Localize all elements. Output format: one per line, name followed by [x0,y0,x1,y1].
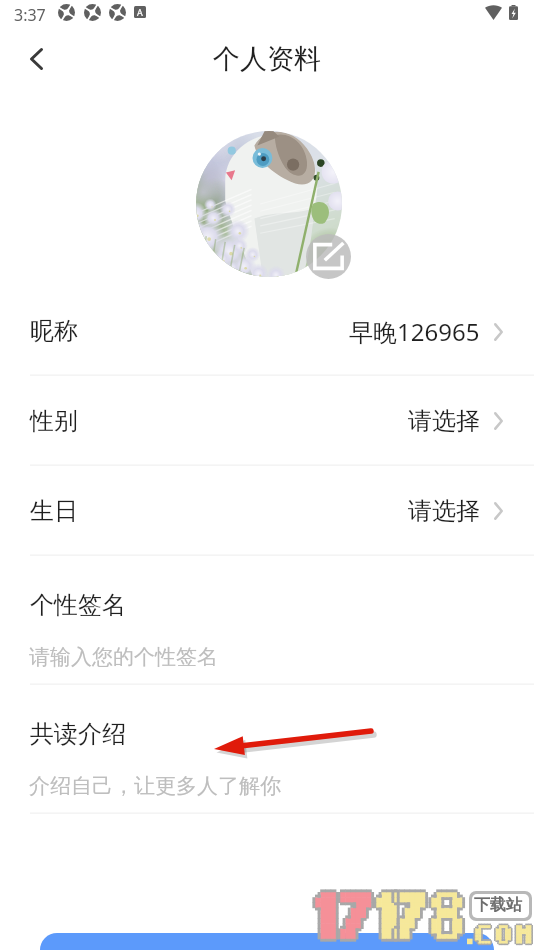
button[interactable]: 个性签名 [0,556,534,685]
staticText: 性别 [30,406,78,436]
staticText: A [137,6,143,18]
button[interactable]: Profile photo [196,131,342,277]
staticText: 下载站 [474,895,522,915]
staticText: 个人资料 [213,42,321,76]
staticText: 请选择 [408,496,480,526]
staticText: 早晚126965 [349,315,480,348]
staticText: 请输入您的个性签名 [29,644,218,670]
staticText: 共读介绍 [30,719,126,749]
button[interactable]: Change profile photo [306,234,351,279]
staticText: 个性签名 [30,590,126,620]
staticText: 介绍自己，让更多人了解你 [29,773,281,799]
button[interactable]: Save [40,933,494,950]
button[interactable]: 昵称 [0,286,534,376]
button[interactable]: 共读介绍 [0,685,534,814]
button[interactable]: Back [11,34,61,84]
staticText: 请选择 [408,406,480,436]
button[interactable]: 生日 [0,466,534,556]
staticText: 生日 [30,496,78,526]
staticText: 昵称 [30,316,78,346]
button[interactable]: 性别 [0,376,534,466]
staticText: 3:37 [14,4,46,26]
